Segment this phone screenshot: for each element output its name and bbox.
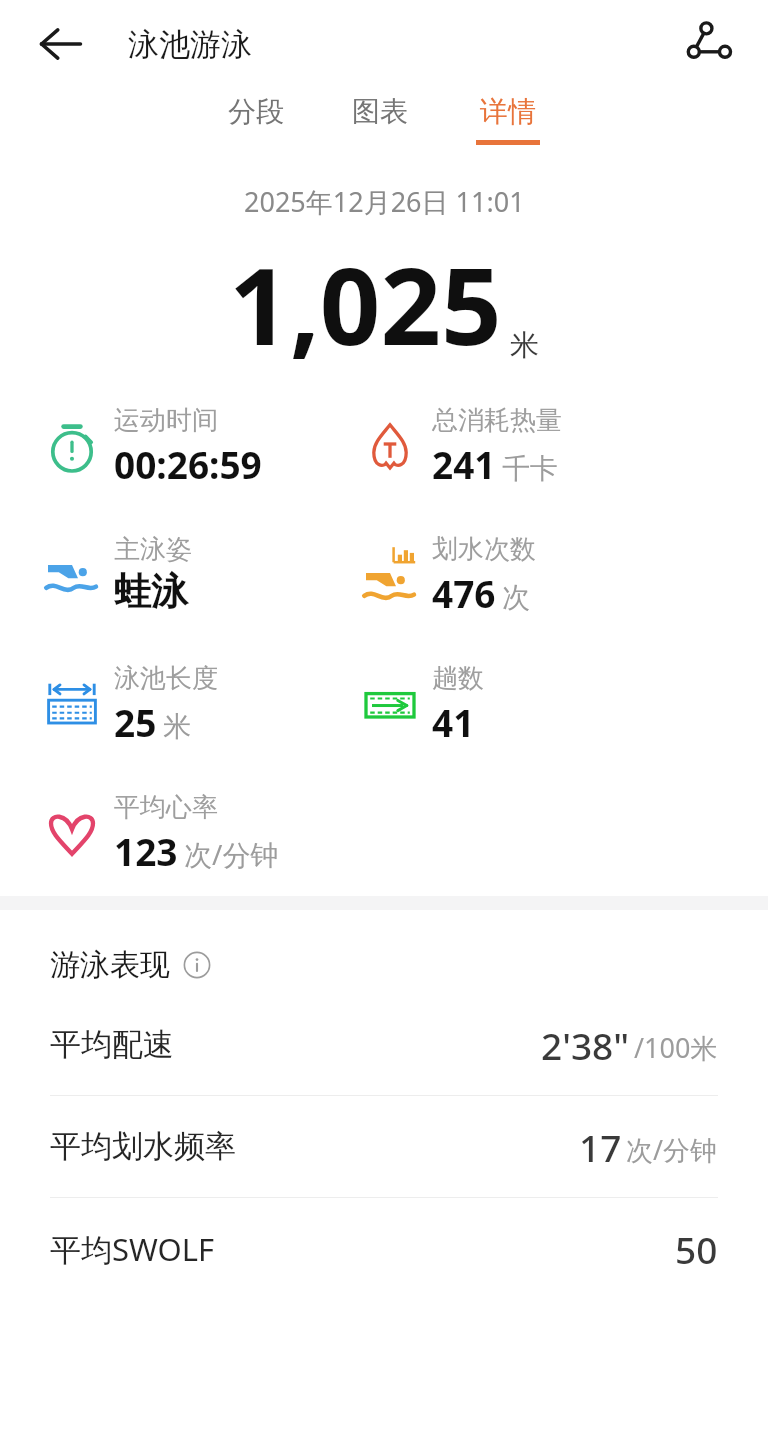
staticText: 蛙泳 xyxy=(114,568,188,615)
button[interactable]: 划水次数 xyxy=(360,533,536,618)
staticText: 41 xyxy=(432,697,475,747)
button[interactable]: 详情 xyxy=(468,88,548,151)
staticText: 476 xyxy=(432,568,496,618)
staticText: 运动时间 xyxy=(114,404,218,437)
staticText: 平均配速 xyxy=(50,1025,174,1064)
button[interactable]: 平均SWOLF xyxy=(0,1198,768,1299)
button[interactable]: 平均划水频率 xyxy=(0,1096,768,1197)
button[interactable]: Back xyxy=(34,17,88,71)
staticText: 分段 xyxy=(228,94,284,129)
staticText: 米 xyxy=(510,327,539,364)
staticText: 次/分钟 xyxy=(626,1131,718,1168)
staticText: 25 xyxy=(114,697,157,747)
button[interactable]: 运动时间 xyxy=(42,404,262,489)
button[interactable]: 分段 xyxy=(220,88,292,151)
button[interactable]: 趟数 xyxy=(360,662,484,747)
staticText: 游泳表现 xyxy=(50,946,170,984)
staticText: 主泳姿 xyxy=(114,533,192,566)
staticText: 总消耗热量 xyxy=(432,404,562,437)
staticText: 241 xyxy=(432,439,496,489)
staticText: 1,025 xyxy=(229,232,502,376)
button[interactable]: 图表 xyxy=(344,88,416,151)
staticText: 17 xyxy=(579,1122,622,1172)
staticText: 次/分钟 xyxy=(184,835,279,873)
staticText: 平均心率 xyxy=(114,791,218,824)
staticText: 123 xyxy=(114,826,178,876)
button[interactable]: 泳池长度 xyxy=(42,662,218,747)
button[interactable]: Info xyxy=(182,950,212,980)
staticText: 00:26:59 xyxy=(114,439,262,489)
staticText: 图表 xyxy=(352,94,408,129)
staticText: 泳池游泳 xyxy=(128,25,252,64)
staticText: 泳池长度 xyxy=(114,662,218,695)
staticText: 详情 xyxy=(480,94,536,129)
button[interactable]: 总消耗热量 xyxy=(360,404,562,489)
staticText: 划水次数 xyxy=(432,533,536,566)
staticText: 2'38" xyxy=(541,1020,630,1070)
button[interactable]: 主泳姿 xyxy=(42,533,192,615)
staticText: 次 xyxy=(502,580,530,615)
staticText: /100米 xyxy=(634,1029,718,1066)
staticText: 千卡 xyxy=(502,451,558,486)
staticText: 趟数 xyxy=(432,662,484,695)
button[interactable]: 平均配速 xyxy=(0,994,768,1095)
staticText: 50 xyxy=(675,1224,718,1274)
staticText: 平均划水频率 xyxy=(50,1127,236,1166)
staticText: 米 xyxy=(163,709,191,744)
staticText: 平均SWOLF xyxy=(50,1228,215,1270)
button[interactable]: Share xyxy=(680,14,740,74)
staticText: 2025年12月26日 11:01 xyxy=(244,183,525,220)
button[interactable]: 平均心率 xyxy=(42,791,279,876)
